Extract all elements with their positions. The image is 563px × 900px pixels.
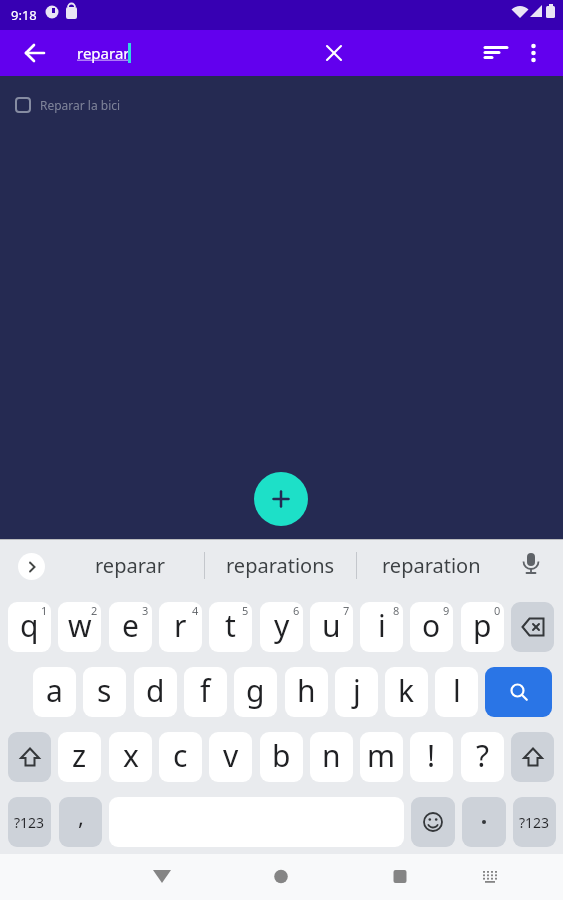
staticText: f: [200, 670, 211, 711]
button[interactable]: reparar: [56, 539, 204, 592]
button[interactable]: n: [310, 732, 353, 782]
button[interactable]: q: [8, 602, 51, 652]
staticText: ?: [476, 735, 490, 776]
button[interactable]: y: [260, 602, 303, 652]
button[interactable]: j: [335, 667, 378, 717]
button[interactable]: p: [461, 602, 504, 652]
button[interactable]: t: [209, 602, 252, 652]
button[interactable]: f: [184, 667, 227, 717]
staticText: 1: [41, 603, 48, 618]
staticText: t: [225, 605, 236, 646]
button[interactable]: x: [109, 732, 152, 782]
staticText: m: [367, 735, 396, 776]
button[interactable]: Reparar la bici: [0, 95, 563, 115]
button[interactable]: [382, 859, 418, 895]
button[interactable]: [511, 732, 554, 782]
button[interactable]: [18, 553, 45, 580]
button[interactable]: [17, 35, 53, 71]
staticText: reparar: [77, 43, 130, 63]
staticText: e: [122, 605, 139, 646]
button[interactable]: [144, 859, 180, 895]
staticText: reparation: [382, 552, 481, 579]
staticText: 0: [494, 603, 501, 618]
staticText: 9: [443, 603, 450, 618]
staticText: y: [274, 605, 290, 646]
button[interactable]: [472, 859, 508, 895]
staticText: i: [378, 605, 386, 646]
button[interactable]: ?123: [513, 797, 556, 847]
button[interactable]: e: [109, 602, 152, 652]
button[interactable]: s: [83, 667, 126, 717]
staticText: reparar: [95, 552, 165, 579]
staticText: r: [174, 605, 187, 646]
button[interactable]: reparation: [357, 539, 505, 592]
staticText: x: [123, 735, 139, 776]
button[interactable]: o: [410, 602, 453, 652]
button[interactable]: r: [159, 602, 202, 652]
staticText: b: [272, 735, 291, 776]
staticText: n: [322, 735, 341, 776]
staticText: 8: [393, 603, 400, 618]
button[interactable]: [263, 859, 299, 895]
button[interactable]: [8, 732, 51, 782]
staticText: q: [20, 605, 39, 646]
button[interactable]: [511, 602, 554, 652]
staticText: c: [173, 735, 188, 776]
button[interactable]: ,: [59, 797, 102, 847]
staticText: 2: [91, 603, 98, 618]
staticText: ?123: [14, 813, 45, 832]
staticText: w: [68, 605, 92, 646]
button[interactable]: z: [58, 732, 101, 782]
button[interactable]: c: [159, 732, 202, 782]
button[interactable]: m: [360, 732, 403, 782]
staticText: h: [297, 670, 316, 711]
button[interactable]: g: [234, 667, 277, 717]
staticText: 9:18: [11, 6, 37, 24]
staticText: 4: [192, 603, 199, 618]
button[interactable]: k: [385, 667, 428, 717]
button[interactable]: b: [260, 732, 303, 782]
staticText: a: [46, 670, 63, 711]
staticText: reparations: [226, 552, 335, 579]
button[interactable]: a: [33, 667, 76, 717]
button[interactable]: [513, 547, 549, 583]
button[interactable]: i: [360, 602, 403, 652]
staticText: v: [223, 735, 239, 776]
staticText: Reparar la bici: [40, 97, 121, 113]
button[interactable]: d: [134, 667, 177, 717]
button[interactable]: ?123: [8, 797, 51, 847]
button[interactable]: !: [410, 732, 453, 782]
button[interactable]: u: [310, 602, 353, 652]
staticText: j: [353, 670, 361, 711]
staticText: z: [72, 735, 87, 776]
button[interactable]: h: [285, 667, 328, 717]
staticText: 6: [293, 603, 300, 618]
button[interactable]: reparations: [205, 539, 356, 592]
staticText: k: [398, 670, 415, 711]
button[interactable]: [485, 667, 552, 717]
staticText: ,: [78, 801, 84, 831]
staticText: d: [146, 670, 165, 711]
button[interactable]: [254, 472, 308, 526]
button[interactable]: [411, 797, 455, 847]
button[interactable]: [515, 35, 551, 71]
button[interactable]: ?: [461, 732, 504, 782]
staticText: 5: [242, 603, 249, 618]
staticText: s: [97, 670, 112, 711]
staticText: !: [427, 735, 436, 776]
staticText: l: [453, 670, 461, 711]
button[interactable]: [462, 797, 506, 847]
button[interactable]: w: [58, 602, 101, 652]
staticText: 3: [142, 603, 149, 618]
staticText: p: [473, 605, 492, 646]
staticText: o: [422, 605, 441, 646]
button[interactable]: reparar: [77, 30, 130, 76]
staticText: 7: [343, 603, 350, 618]
button[interactable]: [477, 35, 513, 71]
staticText: u: [322, 605, 341, 646]
staticText: ?123: [519, 813, 550, 832]
button[interactable]: [316, 35, 352, 71]
button[interactable]: v: [209, 732, 252, 782]
button[interactable]: l: [435, 667, 478, 717]
